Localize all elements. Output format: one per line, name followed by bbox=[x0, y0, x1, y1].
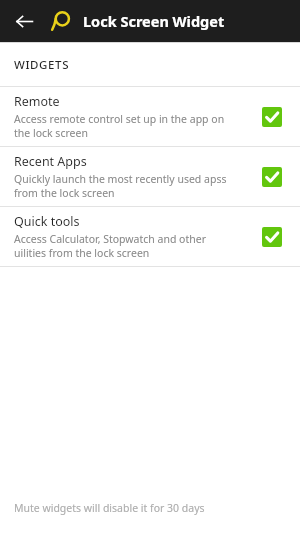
button[interactable]: Remote bbox=[0, 87, 300, 146]
staticText: Access remote control set up in the app … bbox=[14, 112, 225, 126]
staticText: Mute widgets will disable it for 30 days bbox=[14, 501, 205, 515]
staticText: Lock Screen Widget bbox=[83, 11, 225, 31]
button[interactable]: Toggle Recent Apps bbox=[262, 167, 282, 187]
staticText: Remote bbox=[14, 93, 60, 110]
staticText: Quickly launch the most recently used ap… bbox=[14, 172, 227, 186]
staticText: the lock screen bbox=[14, 126, 88, 140]
button[interactable]: Recent Apps bbox=[0, 147, 300, 206]
staticText: Quick tools bbox=[14, 213, 80, 230]
button[interactable]: Toggle Quick tools bbox=[262, 227, 282, 247]
staticText: WIDGETS bbox=[14, 57, 70, 73]
staticText: from the lock screen bbox=[14, 186, 115, 200]
staticText: Recent Apps bbox=[14, 153, 87, 170]
button[interactable]: Toggle Remote bbox=[262, 107, 282, 127]
staticText: Access Calculator, Stopwatch and other bbox=[14, 232, 207, 246]
button[interactable]: Quick tools bbox=[0, 207, 300, 266]
button[interactable]: Back bbox=[6, 3, 42, 39]
staticText: uilities from the lock screen bbox=[14, 246, 150, 260]
